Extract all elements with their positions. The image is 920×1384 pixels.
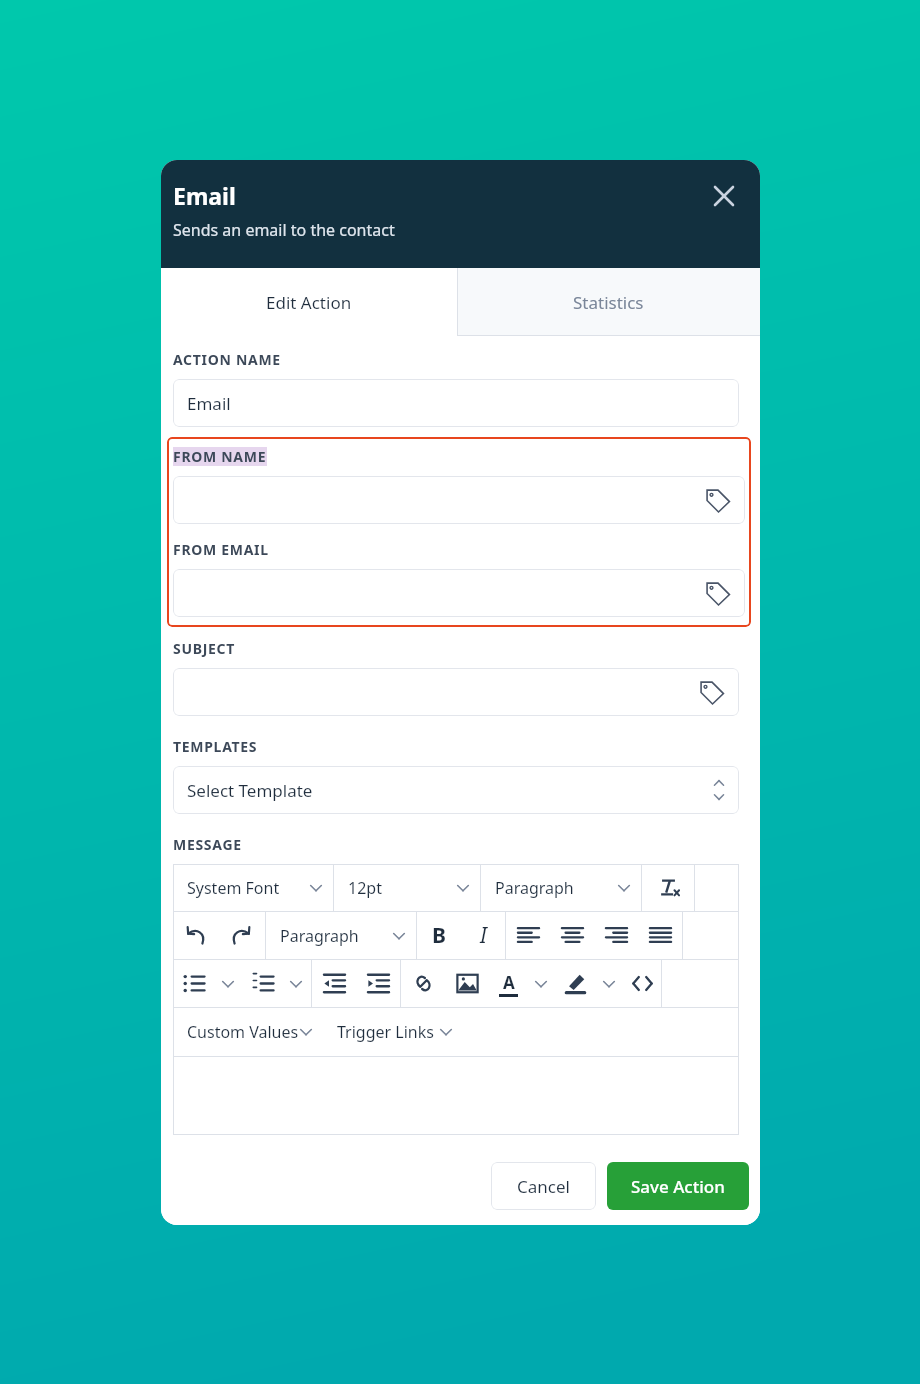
button[interactable]: 12pt <box>334 864 480 911</box>
button[interactable]: Highlight color <box>555 960 595 1007</box>
button[interactable]: Justify <box>638 912 682 959</box>
staticText: Paragraph <box>495 877 574 899</box>
staticText: Paragraph <box>280 925 359 947</box>
staticText: System Font <box>187 877 280 899</box>
button[interactable]: Source code <box>623 960 661 1007</box>
staticText: Custom Values <box>187 1021 299 1043</box>
button[interactable]: Select Template <box>173 766 739 814</box>
button[interactable] <box>173 569 745 617</box>
button[interactable]: Insert image <box>445 960 489 1007</box>
button[interactable]: Text color <box>489 960 527 1007</box>
button[interactable]: Statistics <box>457 268 760 336</box>
button[interactable]: Align left <box>506 912 550 959</box>
staticText: Sends an email to the contact <box>173 219 395 241</box>
staticText: Statistics <box>573 291 644 314</box>
button[interactable]: Align right <box>594 912 638 959</box>
button[interactable]: Text color options <box>527 960 555 1007</box>
button[interactable]: Close <box>702 174 746 218</box>
button[interactable]: Save Action <box>607 1162 749 1210</box>
staticText: Select Template <box>187 779 313 802</box>
staticText: FROM NAME <box>173 447 267 466</box>
button[interactable]: Undo <box>173 912 217 959</box>
button[interactable] <box>173 668 739 716</box>
staticText: B <box>432 921 446 950</box>
button[interactable]: Trigger Links <box>323 1008 463 1056</box>
button[interactable]: Bulleted list <box>173 960 213 1007</box>
button[interactable]: Cancel <box>491 1162 596 1210</box>
button[interactable]: Paragraph <box>266 912 416 959</box>
button[interactable]: List options <box>213 960 243 1007</box>
button[interactable]: B <box>417 912 461 959</box>
button[interactable]: Insert link <box>401 960 445 1007</box>
staticText: Cancel <box>517 1175 570 1198</box>
staticText: TEMPLATES <box>173 737 258 756</box>
button[interactable]: Align center <box>550 912 594 959</box>
staticText: MESSAGE <box>173 835 242 854</box>
button[interactable]: Clear formatting <box>642 864 694 911</box>
button[interactable]: I <box>461 912 505 959</box>
staticText: Edit Action <box>266 291 352 314</box>
staticText: 12pt <box>348 877 382 899</box>
staticText: Email <box>173 180 236 211</box>
button[interactable]: Numbered list <box>243 960 281 1007</box>
button[interactable]: System Font <box>173 864 333 911</box>
staticText: I <box>480 921 487 950</box>
staticText: A <box>503 971 515 994</box>
button[interactable] <box>173 476 745 524</box>
staticText: Email <box>187 392 231 415</box>
staticText: Trigger Links <box>337 1021 434 1043</box>
button[interactable]: Numbered list options <box>281 960 311 1007</box>
button[interactable]: Redo <box>217 912 265 959</box>
button[interactable]: Highlight options <box>595 960 623 1007</box>
button[interactable]: Decrease indent <box>312 960 356 1007</box>
button[interactable]: Email <box>173 379 739 427</box>
button[interactable]: Custom Values <box>173 1008 323 1056</box>
button[interactable]: Paragraph <box>481 864 641 911</box>
staticText: ACTION NAME <box>173 350 281 369</box>
button[interactable]: Increase indent <box>356 960 400 1007</box>
staticText: Save Action <box>631 1175 725 1198</box>
staticText: FROM EMAIL <box>173 540 269 559</box>
button[interactable]: Edit Action <box>161 268 457 336</box>
staticText: SUBJECT <box>173 639 236 658</box>
